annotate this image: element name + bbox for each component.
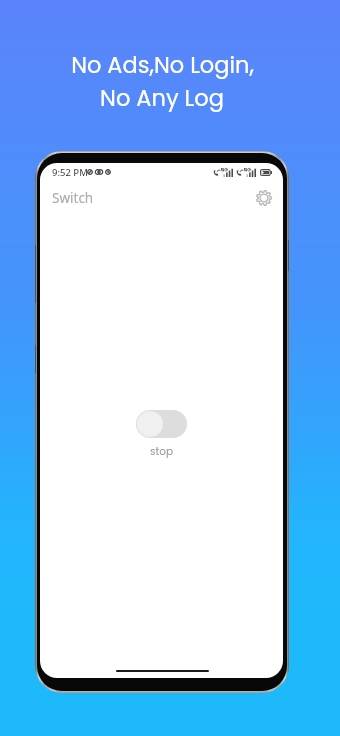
staticText: Switch <box>52 189 94 207</box>
button[interactable]: Toggle VPN <box>136 410 187 438</box>
staticText: stop <box>150 444 174 459</box>
button[interactable]: Settings <box>251 185 277 211</box>
staticText: 9:52 PM <box>52 166 88 179</box>
staticText: No Ads,No Login, <box>71 49 254 80</box>
staticText: No Any Log <box>100 82 224 113</box>
